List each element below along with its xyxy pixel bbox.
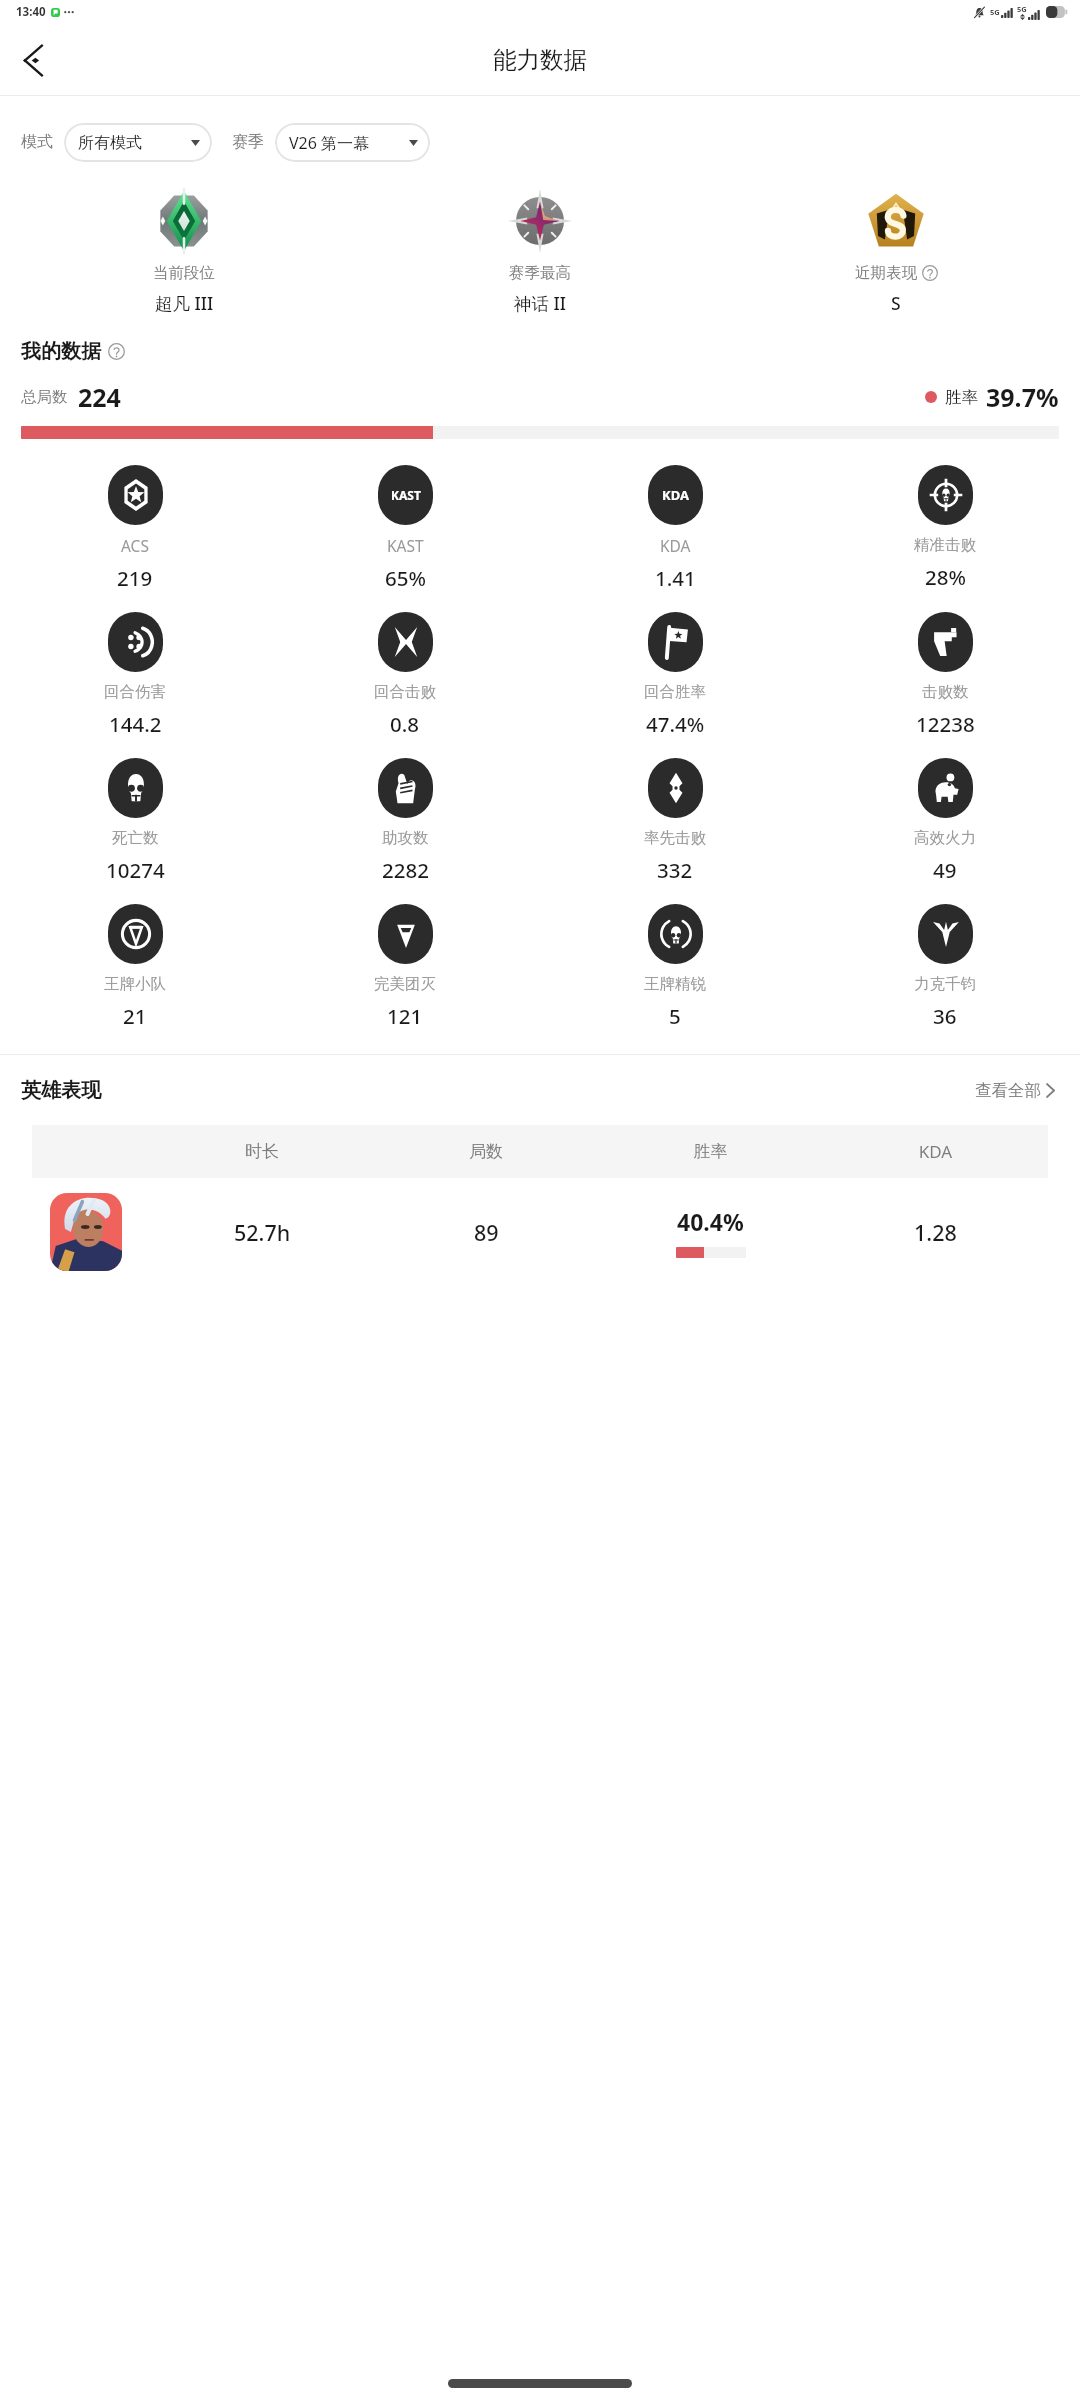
staticText: S [891,291,901,315]
staticText: 12238 [916,710,975,738]
button[interactable]: 完美团灭 [270,904,540,1030]
staticText: 0.8 [390,710,420,738]
staticText: 49 [933,856,957,884]
button[interactable]: 回合胜率 [540,612,810,738]
staticText: 总局数 [21,387,68,407]
staticText: 率先击败 [644,828,706,848]
staticText: 13:40 [16,4,46,20]
button[interactable]: 率先击败 [540,758,810,884]
staticText: 47.4% [646,710,705,738]
staticText: 36 [933,1002,957,1030]
button[interactable]: 当前段位 [6,188,362,315]
staticText: 我的数据 [21,339,101,364]
staticText: 所有模式 [78,133,142,153]
staticText: 219 [117,564,153,592]
button[interactable]: 死亡数 [0,758,270,884]
staticText: 144.2 [109,710,162,738]
staticText: 超凡 III [155,291,214,315]
button[interactable]: 赛季最高 [362,188,718,315]
staticText: 当前段位 [153,263,215,283]
staticText: 时长 [150,1141,374,1162]
staticText: KAST [391,487,421,503]
staticText: KDA [662,486,689,504]
staticText: 胜率 [945,387,978,408]
button[interactable]: 52.7h [32,1178,1048,1286]
staticText: 回合胜率 [644,682,706,702]
button[interactable]: 所有模式 [64,123,212,162]
staticText: 赛季最高 [509,263,571,283]
staticText: 89 [474,1218,499,1247]
staticText: 局数 [374,1141,598,1162]
staticText: 回合击败 [374,682,436,702]
staticText: 击败数 [922,682,969,702]
button[interactable]: 查看全部 [971,1076,1059,1105]
staticText: 28% [925,563,966,591]
staticText: KDA [823,1140,1048,1163]
staticText: 21 [123,1002,147,1030]
staticText: 1.41 [655,564,696,592]
staticText: 40.4% [677,1206,744,1237]
button[interactable]: 近期表现 [718,188,1074,315]
button[interactable]: KDA [540,465,810,592]
button[interactable]: 力克千钧 [810,904,1080,1030]
staticText: 模式 [21,132,53,152]
staticText: 英雄表现 [21,1078,101,1103]
staticText: 224 [78,380,121,414]
button[interactable]: 高效火力 [810,758,1080,884]
staticText: 查看全部 [975,1080,1041,1101]
staticText: 5G [1017,4,1027,14]
button[interactable]: 击败数 [810,612,1080,738]
staticText: 2282 [382,856,429,884]
button[interactable]: V26 第一幕 [275,123,430,162]
staticText: 1.28 [914,1218,957,1247]
staticText: 回合伤害 [104,682,166,702]
staticText: 高效火力 [914,828,976,848]
staticText: 死亡数 [112,828,159,848]
staticText: 65% [385,564,426,592]
staticText: 5G [990,7,1000,17]
staticText: 5 [669,1002,681,1030]
staticText: 赛季 [232,132,264,152]
staticText: KDA [660,535,691,556]
staticText: 力克千钧 [914,974,976,994]
staticText: V26 第一幕 [289,132,370,154]
staticText: 10274 [106,856,165,884]
staticText: 完美团灭 [374,974,436,994]
staticText: KAST [387,535,424,556]
staticText: 王牌小队 [104,974,166,994]
button[interactable]: KAST [270,465,540,592]
staticText: 胜率 [598,1141,823,1162]
button[interactable]: 精准击败 [810,465,1080,591]
button[interactable]: 王牌小队 [0,904,270,1030]
staticText: 助攻数 [382,828,429,848]
button[interactable]: ACS [0,465,270,592]
staticText: 王牌精锐 [644,974,706,994]
staticText: ACS [121,535,149,556]
button[interactable]: 回合伤害 [0,612,270,738]
staticText: 近期表现 [855,263,917,283]
staticText: 52.7h [234,1218,291,1247]
button[interactable]: 王牌精锐 [540,904,810,1030]
button[interactable]: 助攻数 [270,758,540,884]
button[interactable]: Back [9,35,59,85]
staticText: 神话 II [514,291,566,315]
staticText: 能力数据 [493,45,587,75]
staticText: 39.7% [986,380,1059,414]
staticText: 332 [657,856,693,884]
staticText: 精准击败 [914,535,976,555]
staticText: 121 [387,1002,423,1030]
button[interactable]: 回合击败 [270,612,540,738]
